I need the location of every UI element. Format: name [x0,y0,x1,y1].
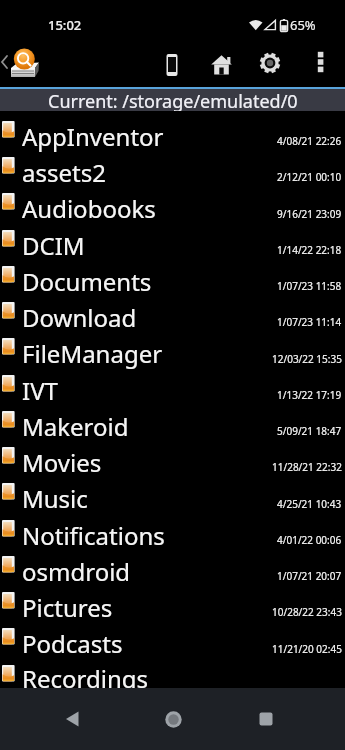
button[interactable]: Download [0,299,345,335]
staticText: Audiobooks [22,192,277,225]
staticText: 12/03/22 15:35 [272,352,342,366]
staticText: 4/25/21 10:43 [277,497,342,511]
staticText: Current: /storage/emulated/0 [48,89,298,111]
staticText: Notifications [22,519,277,552]
button[interactable] [10,37,50,87]
staticText: Download [22,301,277,334]
button[interactable]: Audiobooks [0,190,345,227]
staticText: FileManager [22,337,272,370]
staticText: Makeroid [22,410,277,443]
button[interactable]: Music [0,480,345,517]
button[interactable]: assets2 [0,154,345,190]
staticText: AppInventor [22,120,277,153]
button[interactable] [49,695,97,743]
button[interactable]: osmdroid [0,553,345,589]
button[interactable] [245,37,295,87]
button[interactable]: IVT [0,372,345,408]
staticText: Pictures [22,591,272,624]
button[interactable]: FileManager [0,335,345,372]
staticText: 10/28/22 23:43 [272,605,342,619]
button[interactable] [145,37,195,87]
button[interactable]: Makeroid [0,408,345,444]
staticText: 1/07/23 11:14 [277,315,342,329]
staticText: 1/07/21 20:07 [277,569,342,583]
button[interactable] [295,37,345,87]
staticText: osmdroid [22,555,277,588]
staticText: Movies [22,446,272,479]
staticText: IVT [22,374,277,407]
button[interactable]: AppInventor [0,118,345,154]
staticText: 11/21/20 02:45 [272,642,342,656]
button[interactable]: Podcasts [0,625,345,662]
staticText: DCIM [22,229,277,262]
staticText: 2/12/21 00:10 [277,170,342,184]
staticText: 1/14/22 22:18 [277,243,342,257]
staticText: assets2 [22,156,277,189]
staticText: Podcasts [22,627,272,660]
staticText: 1/07/23 11:58 [277,279,342,293]
staticText: 11/28/21 22:32 [272,460,342,474]
staticText: Music [22,482,277,515]
staticText: 5/09/21 18:47 [277,424,342,438]
staticText: Documents [22,265,277,298]
staticText: 1/13/22 17:19 [277,388,342,402]
staticText: 4/08/21 22:26 [277,134,342,148]
staticText: Recordings [22,662,342,688]
staticText: 15:02 [48,16,82,34]
button[interactable]: Documents [0,263,345,299]
staticText: 65% [290,16,316,34]
button[interactable] [149,695,197,743]
button[interactable]: DCIM [0,227,345,263]
staticText: 9/16/21 23:09 [277,207,342,221]
button[interactable] [242,695,290,743]
staticText: 4/01/22 00:06 [277,533,342,547]
button[interactable]: Movies [0,444,345,480]
button[interactable]: Recordings [0,662,345,688]
button[interactable] [195,37,245,87]
button[interactable]: Notifications [0,517,345,553]
button[interactable]: Pictures [0,589,345,625]
